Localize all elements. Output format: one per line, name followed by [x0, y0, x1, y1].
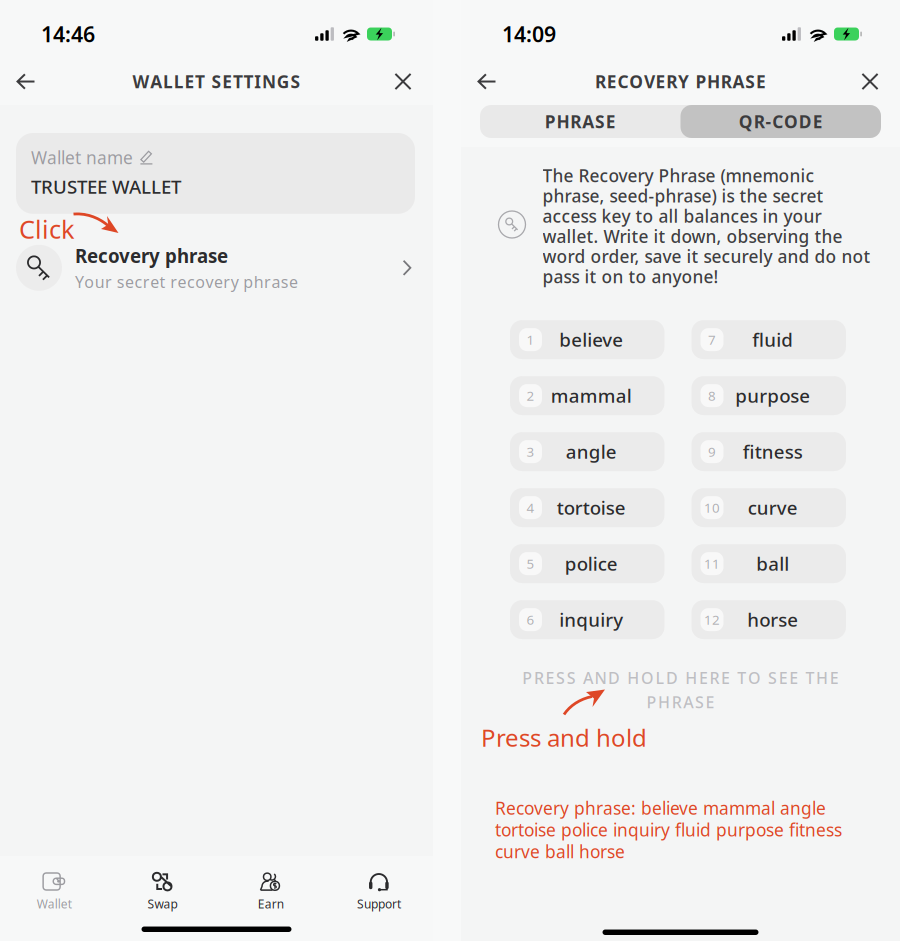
staticText: Click — [19, 212, 75, 246]
button[interactable]: Wallet — [0, 866, 108, 918]
staticText: C — [617, 70, 628, 93]
staticText: R — [534, 667, 544, 688]
staticText: 7 — [708, 331, 716, 348]
staticText: Press and hold — [481, 722, 647, 753]
staticText: H — [685, 667, 697, 688]
staticText: L — [174, 70, 184, 93]
staticText: curve — [748, 495, 798, 520]
staticText: S — [290, 70, 300, 93]
staticText: 6 — [526, 611, 534, 628]
staticText: H — [556, 110, 569, 133]
staticText: O — [641, 667, 654, 688]
staticText: 8 — [708, 387, 716, 404]
staticText: r — [105, 271, 112, 292]
staticText: e — [177, 271, 186, 292]
staticText: E — [721, 667, 730, 688]
button[interactable]: Earn — [216, 866, 325, 918]
staticText: inquiry — [559, 607, 623, 632]
staticText: fitness — [743, 439, 803, 464]
staticText: W — [133, 70, 150, 93]
staticText: H — [627, 667, 639, 688]
staticText: R — [672, 691, 682, 713]
staticText: O — [748, 667, 761, 688]
staticText: h — [254, 271, 264, 292]
staticText: e — [214, 271, 223, 292]
staticText: A — [732, 70, 744, 93]
button[interactable]: Recovery phrase — [0, 239, 433, 297]
staticText: Q — [739, 110, 753, 133]
staticText: 12 — [704, 611, 720, 628]
staticText: E — [545, 667, 554, 688]
staticText: Earn — [258, 896, 284, 912]
staticText: a — [271, 271, 280, 292]
button[interactable]: Support — [325, 866, 433, 918]
staticText: P — [545, 110, 556, 133]
staticText: c — [134, 271, 142, 292]
staticText: 11 — [704, 555, 720, 572]
staticText: R — [754, 110, 765, 133]
button[interactable]: P — [480, 105, 680, 138]
staticText: tortoise — [557, 495, 626, 520]
staticText: o — [84, 271, 94, 292]
staticText: T — [233, 70, 243, 93]
staticText: 14:09 — [502, 20, 556, 48]
staticText: S — [567, 667, 576, 688]
button[interactable]: Close — [846, 60, 894, 102]
staticText: mammal — [551, 383, 632, 408]
staticText: H — [816, 667, 828, 688]
staticText: R — [709, 667, 719, 688]
staticText: 9 — [708, 443, 716, 460]
staticText: E — [656, 70, 666, 93]
staticText: D — [608, 667, 620, 688]
staticText: S — [745, 70, 755, 93]
staticText: E — [789, 667, 798, 688]
button[interactable]: Back — [463, 60, 511, 102]
staticText: N — [594, 667, 606, 688]
staticText: r — [264, 271, 271, 292]
staticText: police — [565, 551, 618, 576]
staticText: s — [117, 271, 125, 292]
staticText: E — [184, 70, 194, 93]
staticText: E — [705, 691, 714, 713]
staticText: Recovery phrase: believe mammal angle to… — [495, 796, 842, 863]
staticText: fluid — [752, 327, 793, 352]
staticText: E — [756, 70, 766, 93]
staticText: S — [695, 691, 704, 713]
staticText: T — [244, 70, 254, 93]
staticText: Swap — [147, 896, 177, 912]
staticText: S — [768, 667, 777, 688]
staticText: S — [556, 667, 565, 688]
button[interactable]: Close — [379, 60, 427, 102]
staticText: Y — [678, 70, 689, 93]
button[interactable]: Back — [2, 60, 50, 102]
staticText: e — [125, 271, 134, 292]
staticText: 2 — [526, 387, 534, 404]
staticText: R — [570, 110, 581, 133]
staticText: A — [683, 691, 693, 713]
staticText: e — [150, 271, 159, 292]
staticText: C — [772, 110, 783, 133]
staticText: S — [595, 110, 605, 133]
staticText: 10 — [704, 499, 720, 516]
staticText: R — [721, 70, 732, 93]
staticText: G — [277, 70, 290, 93]
staticText: A — [582, 110, 594, 133]
staticText: y — [231, 271, 239, 292]
staticText: T — [805, 667, 814, 688]
staticText: horse — [747, 607, 798, 632]
staticText: H — [658, 691, 670, 713]
button[interactable]: Swap — [108, 866, 216, 918]
staticText: o — [195, 271, 205, 292]
staticText: 3 — [526, 443, 534, 460]
staticText: v — [206, 271, 214, 292]
staticText: A — [583, 667, 593, 688]
button[interactable]: Q — [680, 105, 881, 138]
staticText: 4 — [526, 499, 534, 516]
staticText: Y — [75, 271, 84, 292]
